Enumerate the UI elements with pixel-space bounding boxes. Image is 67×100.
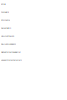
staticText: NEW CUSTOMER	[1, 35, 14, 37]
staticText: Password	[1, 11, 9, 13]
staticText: Email	[1, 3, 5, 5]
staticText: Date of Birth	[1, 27, 11, 29]
staticText: DELIVERY ADDRESS	[1, 43, 16, 45]
staticText: Use 8 or more characters	[1, 59, 22, 61]
staticText: Sign up for our newsletter	[1, 51, 21, 53]
staticText: First name	[1, 19, 10, 21]
